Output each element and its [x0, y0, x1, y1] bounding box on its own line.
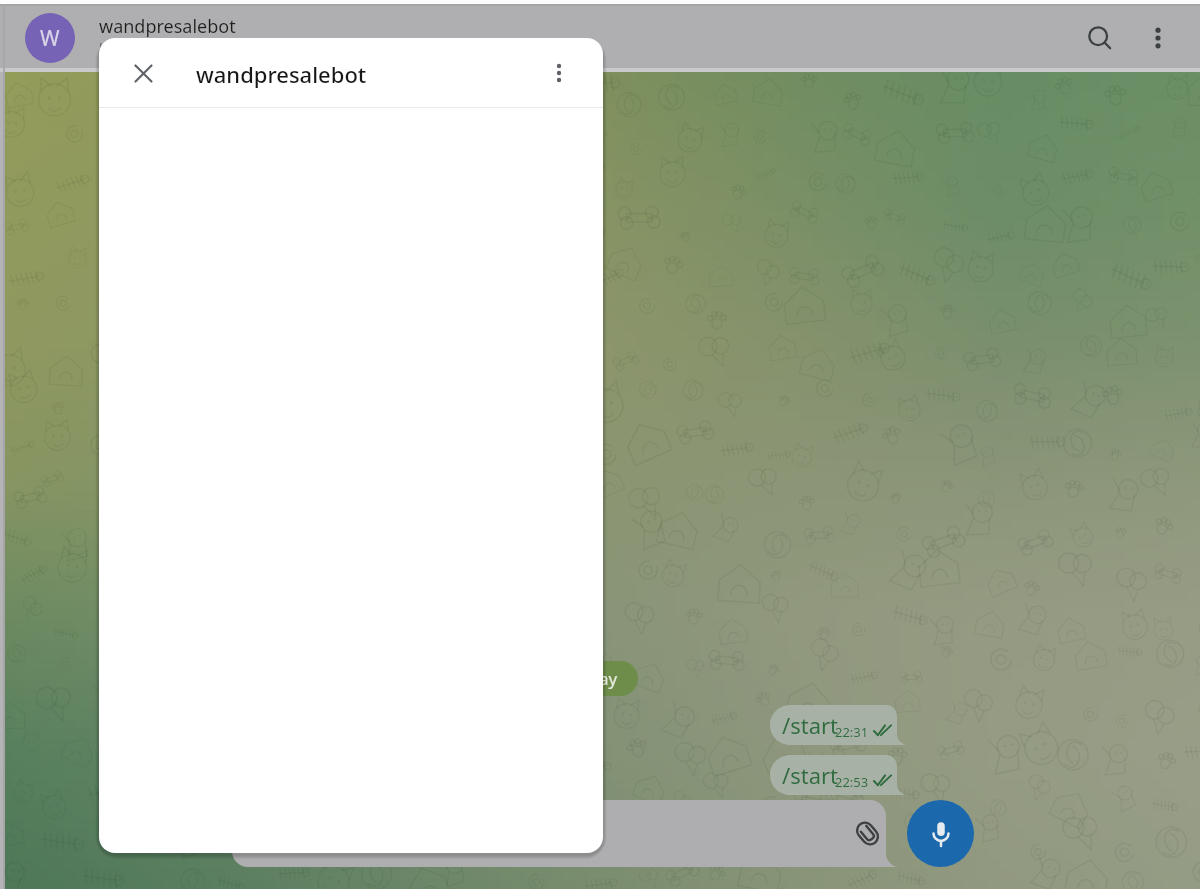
- button[interactable]: /start: [770, 755, 906, 795]
- staticText: 22:53: [835, 773, 869, 791]
- button[interactable]: Record voice message: [907, 800, 974, 867]
- staticText: bot: [99, 39, 122, 58]
- staticText: wandpresalebot: [196, 59, 367, 89]
- staticText: Today: [570, 667, 618, 690]
- button[interactable]: Search: [1078, 16, 1122, 60]
- button[interactable]: Attach file: [845, 811, 889, 855]
- staticText: W: [40, 24, 60, 53]
- button[interactable]: Open profile: [25, 13, 75, 63]
- button[interactable]: Close: [123, 53, 163, 93]
- staticText: /start: [782, 710, 839, 740]
- button[interactable]: More options: [1136, 16, 1180, 60]
- button[interactable]: /start: [770, 705, 906, 745]
- staticText: wandpresalebot: [99, 14, 236, 39]
- button[interactable]: Today: [549, 661, 638, 696]
- staticText: 22:31: [835, 723, 869, 741]
- staticText: /start: [782, 760, 839, 790]
- button[interactable]: Menu: [539, 53, 579, 93]
